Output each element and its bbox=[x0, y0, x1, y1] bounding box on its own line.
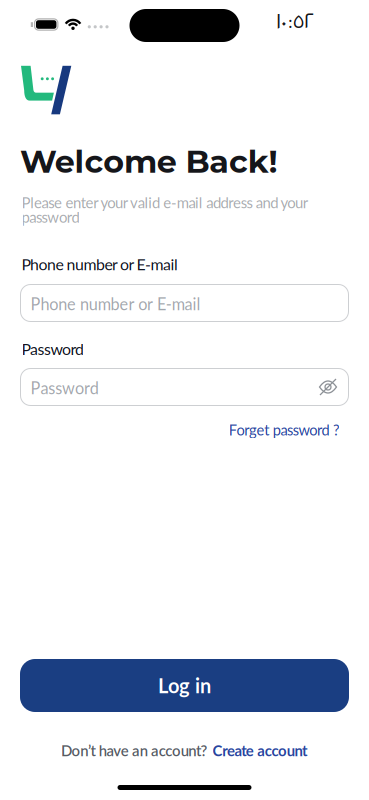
staticText: Create account bbox=[213, 741, 308, 759]
button[interactable]: Don’t have an account? bbox=[0, 741, 369, 759]
staticText: Phone number or E-mail bbox=[30, 294, 200, 314]
staticText: Log in bbox=[158, 673, 211, 697]
button[interactable]: Log in bbox=[20, 659, 349, 712]
staticText: Password bbox=[30, 378, 99, 398]
button[interactable]: Forget password ? bbox=[229, 421, 340, 439]
staticText: Don’t have an account? bbox=[61, 741, 208, 759]
staticText: Forget password ? bbox=[229, 421, 340, 439]
button[interactable]: Phone number or E-mail bbox=[20, 284, 349, 322]
button[interactable]: Password bbox=[20, 368, 349, 406]
staticText: Welcome Back! bbox=[20, 142, 278, 181]
staticText: Phone number or E-mail bbox=[21, 255, 178, 274]
staticText: ١٠:٥٢ bbox=[276, 12, 314, 37]
staticText: Please enter your valid e-mail address a… bbox=[21, 194, 308, 211]
button[interactable] bbox=[319, 378, 349, 395]
staticText: password bbox=[21, 208, 79, 226]
staticText: Password bbox=[21, 339, 84, 358]
